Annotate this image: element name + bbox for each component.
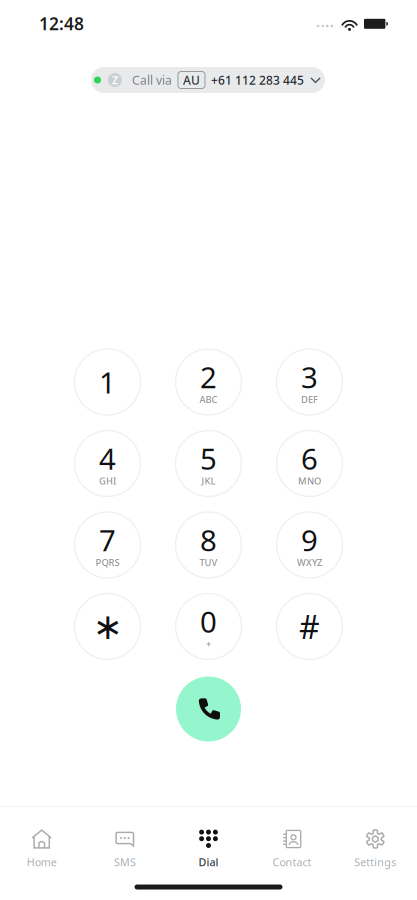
staticText: AU (183, 72, 200, 88)
staticText: WXYZ (297, 556, 322, 569)
staticText: 3 (301, 357, 318, 396)
staticText: 6 (301, 439, 318, 478)
button[interactable]: Home (0, 807, 83, 900)
staticText: 4 (99, 439, 116, 478)
staticText: 12:48 (39, 12, 84, 35)
button[interactable]: 0 (175, 593, 241, 659)
staticText: 7 (99, 520, 116, 559)
button[interactable]: Call (176, 676, 241, 741)
button[interactable]: SMS (83, 807, 167, 900)
button[interactable]: 2 (175, 349, 241, 415)
staticText: MNO (298, 475, 321, 487)
button[interactable]: 3 (276, 349, 342, 415)
button[interactable]: ∗ (74, 593, 140, 659)
button[interactable]: # (276, 593, 342, 659)
staticText: Call via (132, 72, 172, 88)
staticText: Dial (198, 855, 218, 869)
button[interactable]: 5 (175, 430, 241, 496)
staticText: ∗ (92, 606, 122, 647)
staticText: PQRS (95, 556, 119, 569)
button[interactable]: Z (91, 67, 325, 93)
staticText: + (206, 638, 211, 650)
staticText: # (299, 605, 320, 648)
staticText: JKL (201, 475, 215, 487)
button[interactable]: 4 (74, 430, 140, 496)
staticText: 0 (200, 602, 217, 641)
button[interactable]: 1 (74, 349, 140, 415)
staticText: 9 (301, 520, 318, 559)
button[interactable]: Settings (334, 807, 417, 900)
button[interactable]: 6 (276, 430, 342, 496)
staticText: Home (27, 855, 57, 869)
staticText: Settings (354, 855, 396, 869)
staticText: ABC (199, 393, 217, 406)
staticText: 1 (99, 362, 116, 401)
staticText: DEF (301, 393, 318, 406)
staticText: Contact (272, 855, 311, 869)
button[interactable]: 7 (74, 512, 140, 578)
staticText: Z (112, 73, 118, 87)
staticText: 8 (200, 520, 217, 559)
button[interactable]: 8 (175, 512, 241, 578)
staticText: SMS (114, 855, 136, 869)
button[interactable]: Dial (167, 807, 250, 900)
staticText: 2 (200, 357, 217, 396)
button[interactable]: 9 (276, 512, 342, 578)
button[interactable]: Contact (250, 807, 334, 900)
staticText: GHI (99, 475, 116, 487)
staticText: TUV (199, 556, 217, 569)
staticText: +61 112 283 445 (211, 72, 304, 88)
staticText: 5 (200, 439, 217, 478)
